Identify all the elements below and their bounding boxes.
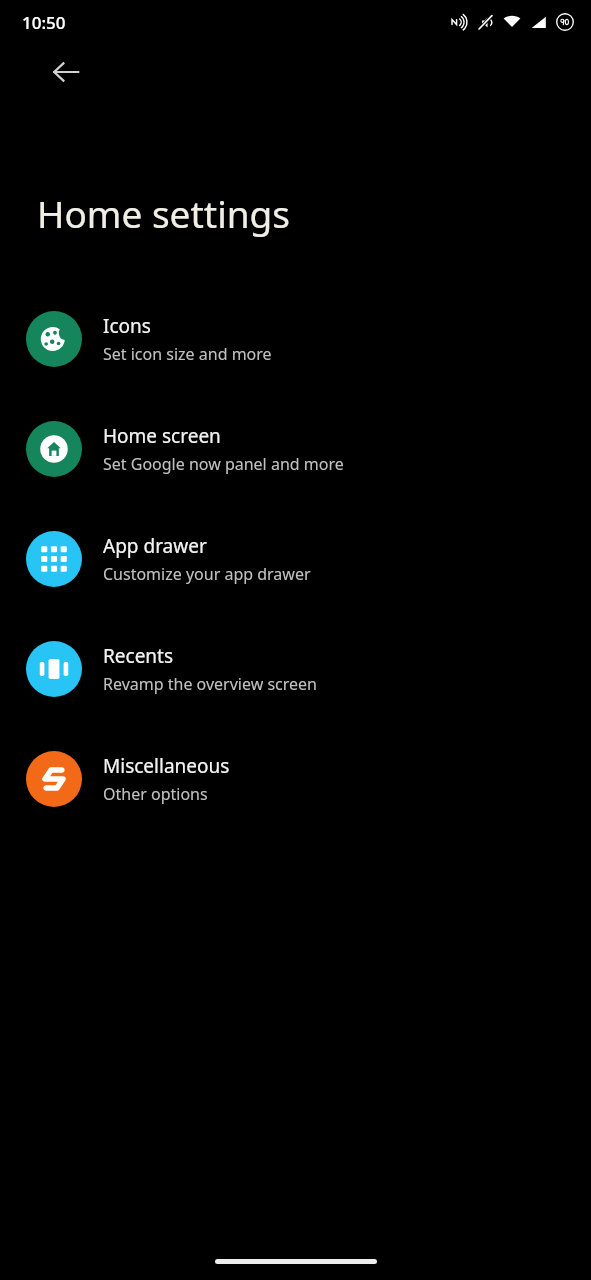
staticText: App drawer xyxy=(103,533,207,559)
staticText: Revamp the overview screen xyxy=(103,673,317,695)
staticText: Other options xyxy=(103,783,208,805)
staticText: Home screen xyxy=(103,423,221,449)
staticText: Set icon size and more xyxy=(103,343,272,365)
button[interactable]: Back xyxy=(38,44,94,100)
button[interactable]: Home screen xyxy=(0,394,591,504)
staticText: Customize your app drawer xyxy=(103,563,311,585)
staticText: Recents xyxy=(103,643,174,669)
staticText: Miscellaneous xyxy=(103,753,230,779)
button[interactable]: Icons xyxy=(0,284,591,394)
button[interactable]: Miscellaneous xyxy=(0,724,591,834)
staticText: Set Google now panel and more xyxy=(103,453,344,475)
staticText: Home settings xyxy=(37,188,291,238)
staticText: 10:50 xyxy=(22,11,66,34)
button[interactable]: Recents xyxy=(0,614,591,724)
staticText: Icons xyxy=(103,313,151,339)
button[interactable]: App drawer xyxy=(0,504,591,614)
